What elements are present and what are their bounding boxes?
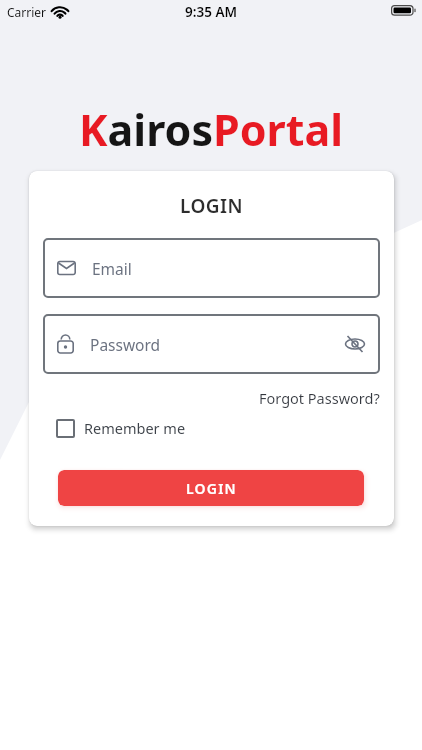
button[interactable]: Password (43, 314, 380, 374)
button[interactable]: Forgot Password? (259, 388, 380, 408)
staticText: Carrier (7, 4, 47, 20)
button[interactable]: Email (43, 238, 380, 298)
button[interactable] (343, 332, 367, 356)
staticText: Remember me (84, 418, 186, 438)
button[interactable]: LOGIN (58, 470, 364, 506)
staticText: LOGIN (29, 193, 394, 219)
button[interactable]: Remember me (56, 418, 186, 438)
staticText: Email (92, 258, 132, 279)
staticText: 9:35 AM (0, 3, 422, 21)
staticText: LOGIN (186, 479, 237, 498)
staticText: KairosPortal (0, 100, 422, 159)
staticText: Password (90, 334, 161, 355)
